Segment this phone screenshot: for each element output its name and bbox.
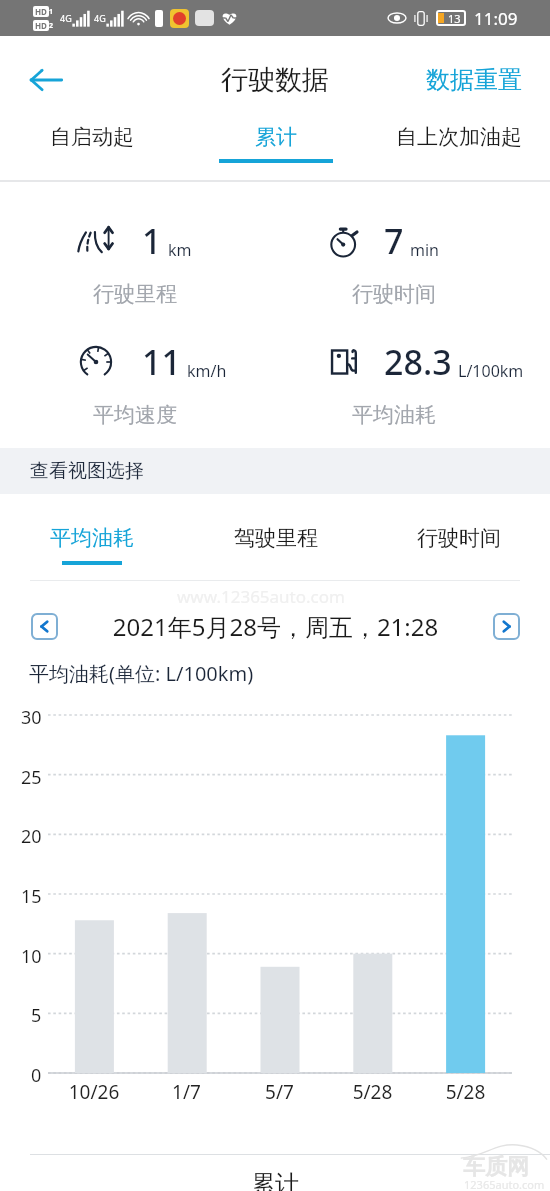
staticText: 1 — [49, 7, 54, 17]
staticText: 平均速度 — [93, 402, 177, 428]
button[interactable]: 自上次加油起 — [367, 123, 550, 178]
staticText: 累计 — [0, 1169, 550, 1191]
staticText: 11 — [142, 339, 181, 385]
staticText: 5/7 — [233, 1079, 326, 1105]
staticText: 10 — [21, 944, 42, 969]
staticText: 30 — [21, 705, 42, 730]
staticText: 5/28 — [326, 1079, 419, 1105]
staticText: 12365auto.com — [464, 1177, 545, 1191]
staticText: 0 — [31, 1063, 42, 1088]
staticText: 10/26 — [48, 1079, 140, 1105]
staticText: min — [410, 239, 439, 261]
staticText: 自启动起 — [50, 124, 134, 150]
button[interactable]: 驾驶里程 — [184, 494, 367, 580]
button[interactable]: 行驶时间 — [367, 494, 550, 580]
staticText: 1 — [142, 218, 162, 264]
staticText: 7 — [384, 218, 404, 264]
staticText: 2021年5月28号，周五，21:28 — [58, 610, 493, 643]
staticText: 4G — [60, 12, 72, 24]
staticText: 5/28 — [419, 1079, 512, 1105]
button[interactable]: 自启动起 — [0, 123, 184, 178]
staticText: HD — [35, 20, 47, 31]
staticText: 2 — [49, 21, 54, 31]
staticText: 自上次加油起 — [396, 124, 522, 150]
staticText: 5 — [31, 1003, 42, 1028]
staticText: 4G — [94, 12, 106, 24]
staticText: 平均油耗 — [50, 525, 134, 551]
staticText: 行驶时间 — [352, 281, 436, 307]
staticText: 行驶时间 — [417, 525, 501, 551]
staticText: 平均油耗 — [352, 402, 436, 428]
staticText: 15 — [21, 884, 42, 909]
staticText: 数据重置 — [426, 65, 522, 95]
staticText: 1/7 — [140, 1079, 233, 1105]
staticText: 25 — [21, 765, 42, 790]
staticText: 驾驶里程 — [234, 525, 318, 551]
staticText: L/100km — [458, 360, 524, 382]
button[interactable]: Next date — [493, 613, 520, 640]
staticText: 车质网 — [463, 1153, 529, 1181]
button[interactable]: 平均油耗 — [0, 494, 184, 580]
button[interactable]: 数据重置 — [426, 65, 522, 95]
staticText: 平均油耗(单位: L/100km) — [29, 660, 254, 687]
staticText: 11:09 — [474, 7, 518, 30]
staticText: 行驶里程 — [93, 281, 177, 307]
button[interactable]: Back — [22, 56, 70, 104]
staticText: 13 — [448, 11, 461, 26]
staticText: km — [168, 239, 192, 261]
staticText: www.12365auto.com — [177, 585, 345, 608]
button[interactable]: Previous date — [31, 613, 58, 640]
staticText: 20 — [21, 824, 42, 849]
staticText: 行驶数据 — [221, 63, 329, 97]
staticText: 累计 — [255, 124, 297, 150]
staticText: km/h — [187, 360, 227, 382]
staticText: 查看视图选择 — [30, 459, 144, 483]
button[interactable]: 累计 — [184, 123, 367, 178]
staticText: HD — [35, 6, 47, 17]
staticText: 28.3 — [384, 339, 452, 385]
